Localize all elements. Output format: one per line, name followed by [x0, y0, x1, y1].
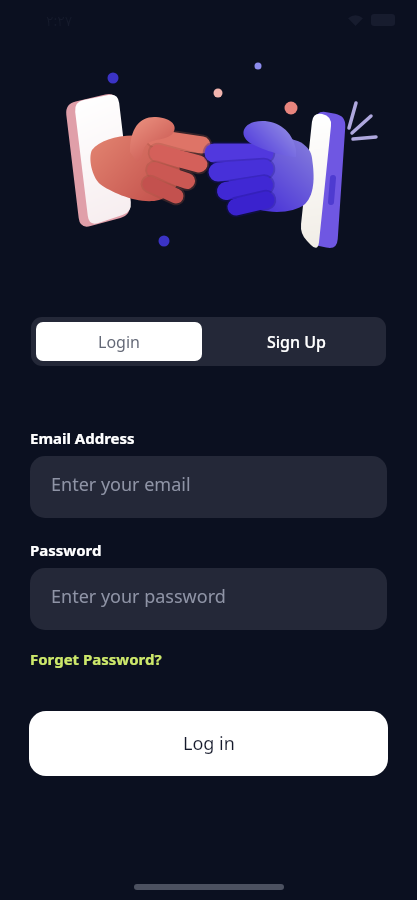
- button[interactable]: Login: [36, 322, 202, 361]
- staticText: Enter your password: [51, 584, 226, 609]
- staticText: Login: [98, 331, 140, 353]
- button[interactable]: Sign Up: [207, 317, 386, 366]
- staticText: Log in: [183, 731, 235, 756]
- button[interactable]: Forget Password?: [30, 649, 162, 669]
- staticText: Forget Password?: [30, 649, 162, 669]
- button[interactable]: Enter your password: [30, 568, 387, 630]
- staticText: Enter your email: [51, 472, 191, 497]
- staticText: Sign Up: [267, 331, 326, 353]
- staticText: Password: [30, 540, 102, 560]
- staticText: Email Address: [30, 428, 135, 448]
- button[interactable]: Log in: [29, 711, 388, 776]
- button[interactable]: Enter your email: [30, 456, 387, 518]
